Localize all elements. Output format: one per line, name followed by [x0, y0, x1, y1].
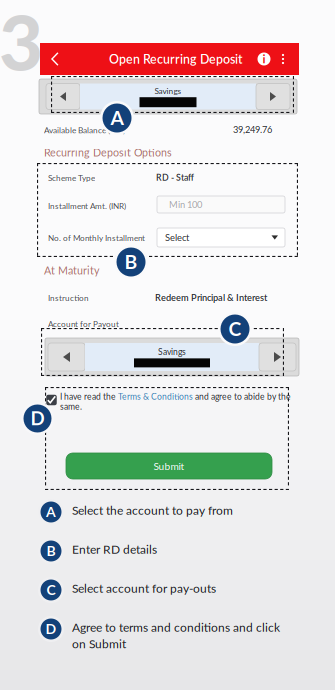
staticText: Submit	[153, 460, 184, 472]
button[interactable]: Previous account	[48, 343, 85, 371]
staticText: Available Balance (INR)	[44, 125, 125, 135]
button[interactable]: Savings account	[85, 343, 259, 371]
button[interactable]: Back	[42, 43, 68, 75]
button[interactable]: Next account	[259, 343, 296, 371]
staticText: Select	[165, 232, 189, 243]
staticText: and agree to abide by the	[193, 391, 291, 402]
staticText: Account for Payout	[48, 319, 119, 329]
button[interactable]: More options	[272, 43, 294, 75]
staticText: Open Recurring Deposit	[109, 52, 243, 66]
staticText: Select the account to pay from	[72, 503, 233, 517]
staticText: A	[46, 503, 56, 520]
staticText: Agree to terms and conditions and click	[72, 620, 280, 634]
staticText: 3	[0, 0, 43, 87]
staticText: B	[124, 250, 137, 273]
staticText: i	[262, 51, 265, 66]
staticText: Recurring Deposit Options	[44, 146, 172, 159]
staticText: Min 100	[169, 199, 202, 210]
button[interactable]: Submit	[66, 453, 272, 479]
staticText: B	[46, 542, 55, 559]
button[interactable]: I agree to terms and conditions	[44, 393, 58, 407]
staticText: At Maturity	[44, 264, 99, 277]
staticText: D	[45, 620, 56, 637]
staticText: C	[46, 581, 55, 598]
staticText: Instruction	[48, 293, 89, 303]
staticText: Enter RD details	[72, 542, 157, 556]
staticText: Select account for pay-outs	[72, 581, 216, 595]
button[interactable]: Savings account	[80, 83, 256, 109]
staticText: No. of Monthly Installment	[48, 233, 145, 243]
staticText: A	[110, 106, 123, 129]
staticText: Installment Amt. (INR)	[48, 201, 126, 211]
staticText: Savings	[154, 86, 181, 96]
staticText: Redeem Principal & Interest	[155, 292, 267, 303]
staticText: D	[30, 407, 44, 429]
staticText: same.	[60, 401, 82, 412]
staticText: Scheme Type	[48, 173, 95, 183]
staticText: on Submit	[72, 636, 126, 651]
button[interactable]: Select	[157, 228, 285, 247]
button[interactable]: Information	[251, 43, 277, 75]
staticText: 39,249.76	[233, 124, 272, 135]
button[interactable]: Next account	[256, 83, 290, 109]
staticText: Terms & Conditions	[118, 391, 193, 402]
button[interactable]: Previous account	[46, 83, 80, 109]
staticText: I have read the	[60, 391, 118, 402]
staticText: C	[228, 317, 241, 340]
staticText: RD - Staff	[156, 172, 194, 183]
staticText: Savings	[158, 347, 186, 357]
